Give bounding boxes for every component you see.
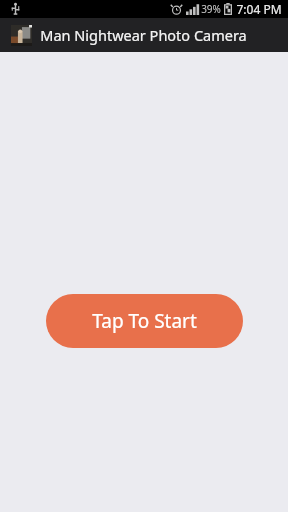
- button[interactable]: Tap To Start: [46, 294, 243, 348]
- staticText: 7:04 PM: [236, 1, 282, 17]
- staticText: Man Nightwear Photo Camera: [40, 25, 247, 45]
- staticText: Tap To Start: [92, 308, 197, 334]
- staticText: 39%: [201, 2, 221, 16]
